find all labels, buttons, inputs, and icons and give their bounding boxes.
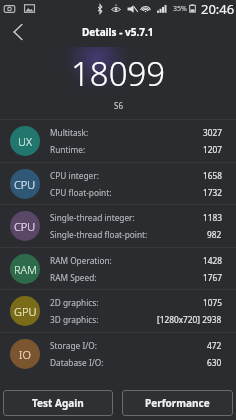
- staticText: Performance: [145, 396, 210, 410]
- staticText: Details - v5.7.1: [82, 25, 154, 39]
- staticText: CPU float-point:: [50, 187, 112, 198]
- staticText: 630: [207, 357, 222, 368]
- staticText: 3D graphics:: [50, 314, 99, 325]
- button[interactable]: GPU: [0, 290, 236, 332]
- staticText: 1207: [203, 144, 222, 155]
- staticText: 1183: [203, 212, 222, 223]
- staticText: 18099: [71, 51, 166, 96]
- button[interactable]: IO: [0, 333, 236, 374]
- staticText: 1658: [203, 170, 222, 181]
- button[interactable]: CPU: [0, 205, 236, 247]
- staticText: 472: [207, 340, 222, 351]
- staticText: CPU: [14, 177, 36, 192]
- staticText: 35%: [173, 4, 187, 14]
- staticText: 1767: [203, 272, 222, 283]
- staticText: S6: [114, 100, 123, 111]
- staticText: 20:46: [201, 0, 235, 17]
- staticText: [1280x720] 2938: [157, 314, 222, 325]
- button[interactable]: Back: [0, 17, 34, 47]
- staticText: Single-thread integer:: [50, 212, 135, 223]
- staticText: Multitask:: [50, 127, 89, 138]
- staticText: Runtime:: [50, 144, 86, 155]
- button[interactable]: UX: [0, 120, 236, 162]
- button[interactable]: Test Again: [3, 390, 113, 416]
- staticText: 3027: [203, 127, 222, 138]
- staticText: RAM: [14, 262, 37, 277]
- staticText: GPU: [14, 304, 37, 319]
- staticText: 2D graphics:: [50, 297, 99, 308]
- button[interactable]: CPU: [0, 163, 236, 204]
- staticText: 1732: [203, 187, 222, 198]
- staticText: CPU integer:: [50, 170, 99, 181]
- staticText: 1075: [203, 297, 222, 308]
- button[interactable]: Performance: [122, 390, 233, 416]
- staticText: Storage I/O:: [50, 340, 98, 351]
- staticText: RAM Speed:: [50, 272, 97, 283]
- staticText: Database I/O:: [50, 357, 104, 368]
- staticText: Test Again: [32, 396, 84, 410]
- staticText: UX: [18, 134, 32, 149]
- staticText: 1428: [203, 255, 222, 266]
- staticText: RAM Operation:: [50, 255, 112, 266]
- button[interactable]: RAM: [0, 248, 236, 289]
- staticText: 982: [207, 229, 222, 240]
- staticText: CPU: [14, 219, 36, 234]
- staticText: IO: [19, 347, 31, 362]
- staticText: Single-thread float-point:: [50, 229, 148, 240]
